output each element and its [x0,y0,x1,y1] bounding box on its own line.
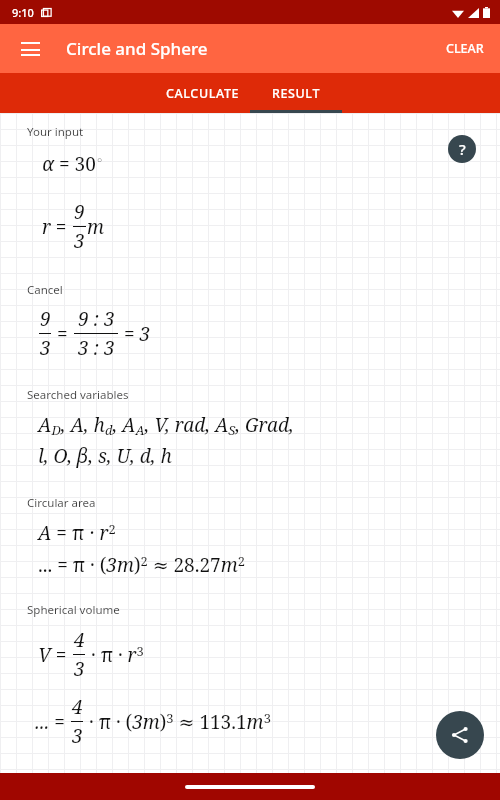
staticText: Circle and Sphere [66,37,208,60]
staticText: RESULT [272,85,321,102]
staticText: Circular area [27,495,96,511]
staticText: m [87,214,105,240]
staticText: 4 [72,694,83,720]
staticText: V = [38,642,72,668]
staticText: Searched variables [27,387,129,403]
staticText: 3 [72,723,83,749]
staticText: l, O, β, s, U, d, h [38,443,172,469]
staticText: = 3 [119,321,151,347]
staticText: CLEAR [446,40,484,57]
staticText: Spherical volume [27,602,120,618]
button[interactable]: Open navigation menu [10,29,50,69]
staticText: 9 : 3 [78,306,115,332]
staticText: · π · r3 [86,642,144,668]
staticText: 3 [74,656,85,682]
staticText: · π · (3m)3 ≈ 113.1m3 [84,709,271,735]
button[interactable]: CALCULATE [155,73,250,113]
staticText: r = [42,214,72,240]
staticText: Cancel [27,282,63,298]
staticText: 3 [74,228,85,254]
staticText: 3 [40,335,51,361]
staticText: CALCULATE [166,85,240,102]
staticText: 9 [40,306,51,332]
staticText: A = π · r2 [38,520,116,546]
staticText: ... = π · (3m)2 ≈ 28.27m2 [38,552,245,578]
button[interactable]: Help [448,135,476,163]
button[interactable]: RESULT [250,73,342,113]
staticText: Your input [27,124,84,140]
staticText: 4 [74,627,85,653]
staticText: = [52,321,73,347]
staticText: 9 [74,199,85,225]
staticText: AD, A, hd, AA, V, rad, AS, Grad, [38,412,294,439]
staticText: ? [459,139,466,159]
staticText: 9:10 [12,5,34,20]
button[interactable]: CLEAR [436,32,494,65]
staticText: ... = [35,709,70,735]
staticText: 3 : 3 [78,335,115,361]
staticText: α = 30◦ [42,151,104,177]
button[interactable]: Share [436,711,484,759]
